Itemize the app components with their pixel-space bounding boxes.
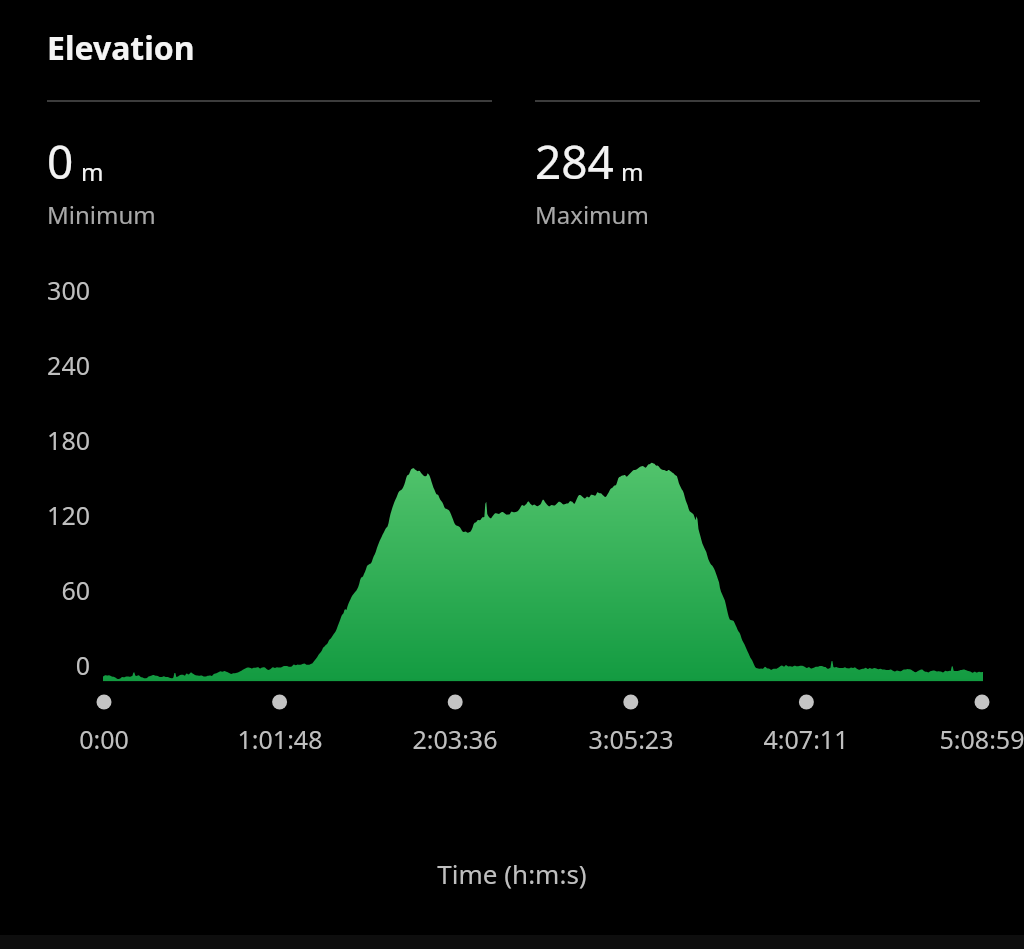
staticText: 284 [535,130,614,193]
button[interactable]: Elevation [0,0,1024,78]
staticText: m [81,155,104,188]
button[interactable]: 0 [47,100,492,231]
staticText: 0 [0,648,90,682]
staticText: Elevation [47,26,195,70]
staticText: 3:05:23 [541,722,721,756]
staticText: 240 [0,348,90,382]
staticText: Minimum [47,198,156,231]
staticText: Maximum [535,198,649,231]
staticText: 4:07:11 [716,722,896,756]
staticText: m [621,155,644,188]
staticText: 120 [0,498,90,532]
staticText: 0:00 [14,722,194,756]
staticText: 180 [0,423,90,457]
staticText: Time (h:m:s) [0,856,1024,891]
staticText: 300 [0,273,90,307]
staticText: 0 [47,130,74,193]
staticText: 2:03:36 [365,722,545,756]
staticText: 60 [0,573,90,607]
button[interactable]: Elevation profile chart [0,231,1024,821]
staticText: 1:01:48 [190,722,370,756]
button[interactable]: 284 [535,100,980,231]
staticText: 5:08:59 [892,722,1024,756]
